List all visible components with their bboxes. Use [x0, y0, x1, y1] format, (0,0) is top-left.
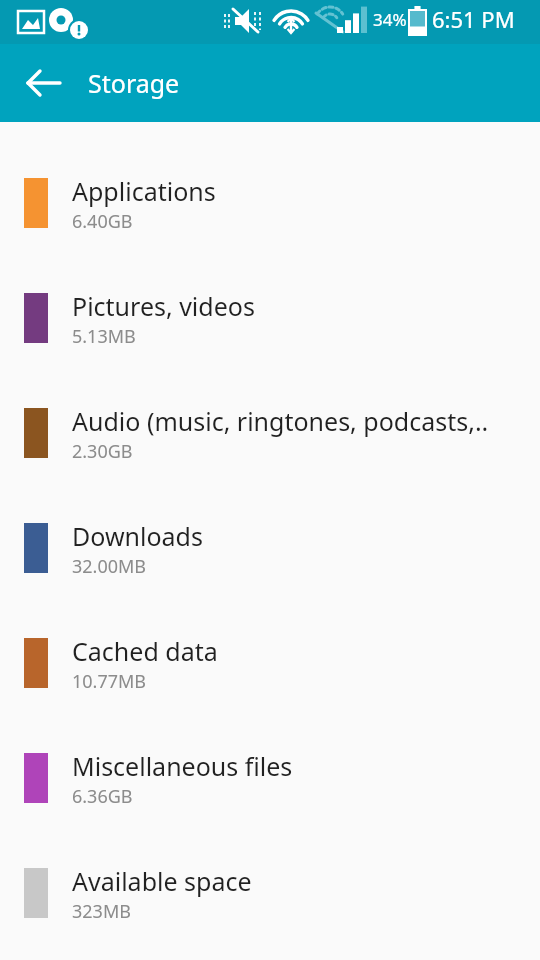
- staticText: 5.13MB: [72, 324, 136, 349]
- staticText: Miscellaneous files: [72, 749, 293, 783]
- button[interactable]: Downloads: [0, 467, 540, 582]
- staticText: 32.00MB: [72, 554, 147, 579]
- staticText: Cached data: [72, 634, 218, 668]
- staticText: Pictures, videos: [72, 289, 255, 323]
- button[interactable]: Miscellaneous files: [0, 697, 540, 812]
- staticText: 6.36GB: [72, 784, 133, 809]
- staticText: Storage: [88, 66, 180, 100]
- button[interactable]: Cached data: [0, 582, 540, 697]
- button[interactable]: Available space: [0, 812, 540, 927]
- button[interactable]: Applications: [0, 122, 540, 237]
- staticText: 6:51 PM: [432, 4, 515, 34]
- button[interactable]: Pictures, videos: [0, 237, 540, 352]
- staticText: Applications: [72, 174, 216, 208]
- staticText: 2.30GB: [72, 439, 133, 464]
- staticText: 6.40GB: [72, 209, 133, 234]
- button[interactable]: Audio (music, ringtones, podcasts,..: [0, 352, 540, 467]
- button[interactable]: Back: [16, 57, 68, 109]
- staticText: 34%: [373, 8, 407, 31]
- staticText: 323MB: [72, 899, 131, 924]
- staticText: Downloads: [72, 519, 203, 553]
- staticText: Audio (music, ringtones, podcasts,..: [72, 404, 489, 438]
- staticText: Available space: [72, 864, 252, 898]
- staticText: 10.77MB: [72, 669, 147, 694]
